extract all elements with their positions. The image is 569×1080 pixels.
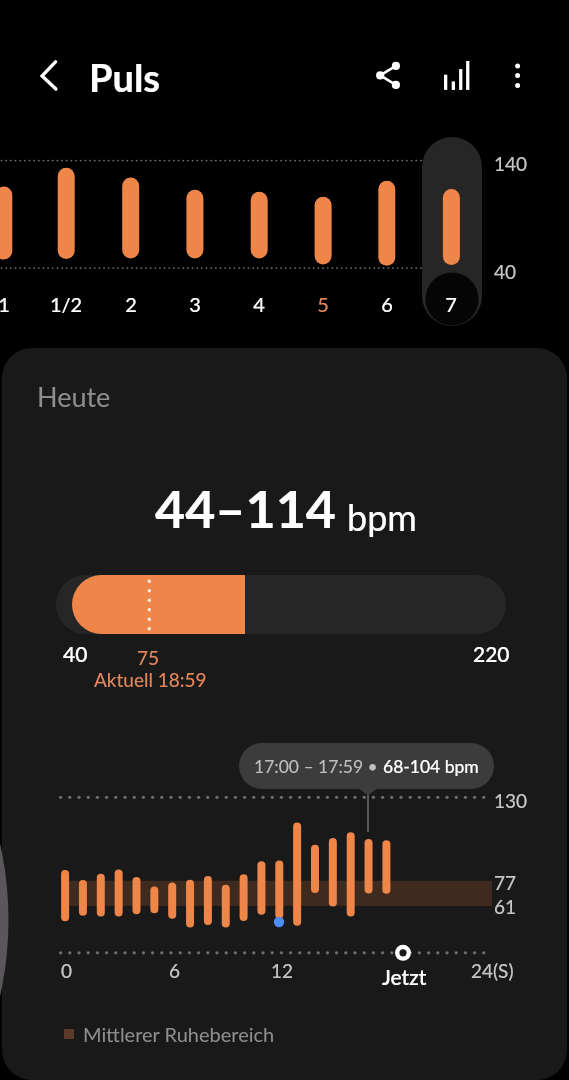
staticText: 0 [61, 959, 73, 982]
staticText: 61 [494, 895, 517, 918]
staticText: 220 [473, 641, 510, 666]
button[interactable]: 7 [429, 292, 473, 316]
staticText: 75 [137, 646, 160, 669]
button[interactable]: Share [362, 49, 414, 101]
staticText: 6 [169, 959, 181, 982]
button[interactable]: Statistics [430, 49, 482, 101]
staticText: 40 [494, 260, 517, 283]
staticText: 24(S) [471, 959, 514, 982]
staticText: 12 [271, 959, 294, 982]
button[interactable]: Puls [89, 54, 161, 100]
staticText: 17:00 – 17:59 • [254, 756, 383, 777]
button[interactable]: 1 [0, 292, 26, 316]
button[interactable]: 5 [301, 292, 345, 316]
button[interactable]: 6 [365, 292, 409, 316]
button[interactable]: 1/2 [44, 292, 88, 316]
staticText: 77 [494, 871, 517, 894]
staticText: 130 [494, 789, 528, 812]
button[interactable]: More options [492, 49, 544, 101]
button[interactable]: 17:00 – 17:59 • [239, 743, 494, 789]
staticText: Jetzt [382, 964, 427, 989]
staticText: Mittlerer Ruhebereich [83, 1022, 275, 1046]
staticText: 44–114 [155, 477, 336, 539]
staticText: 40 [63, 641, 88, 666]
staticText: Heute [37, 380, 111, 412]
button[interactable]: 4 [237, 292, 281, 316]
staticText: 140 [494, 152, 528, 175]
staticText: Aktuell 18:59 [94, 668, 207, 691]
button[interactable]: 3 [173, 292, 217, 316]
button[interactable]: 2 [109, 292, 153, 316]
staticText: 68-104 bpm [383, 756, 479, 777]
button[interactable]: Back [21, 48, 77, 104]
button[interactable]: Mittlerer Ruhebereich [64, 1022, 275, 1046]
staticText: bpm [347, 495, 417, 538]
